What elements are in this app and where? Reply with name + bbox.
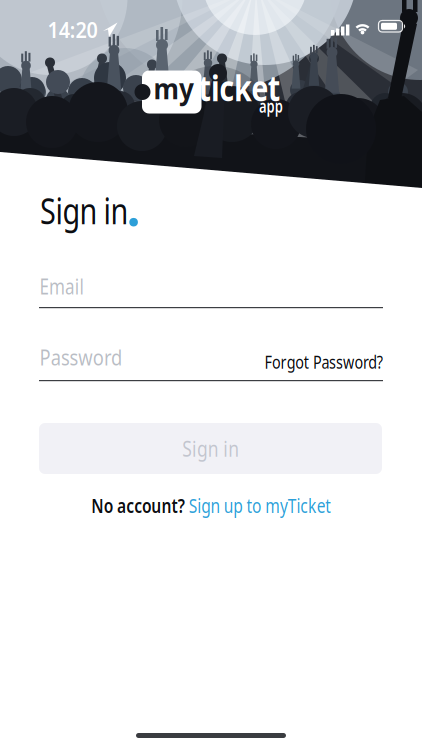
button[interactable]: Sign up to myTicket [182, 492, 364, 519]
staticText: Password [39, 343, 135, 371]
staticText: Sign up to myTicket [182, 492, 364, 519]
staticText: app [259, 94, 291, 117]
staticText: ticket [198, 63, 301, 111]
staticText: Forgot Password? [229, 349, 383, 374]
staticText: 14:20 [47, 15, 101, 44]
button[interactable]: Sign in [39, 423, 382, 474]
textField[interactable]: Email [39, 269, 383, 309]
staticText: Sign in [176, 434, 245, 463]
secureTextField[interactable]: Password [39, 342, 259, 382]
button[interactable]: Forgot Password? [229, 349, 383, 374]
staticText: my [153, 68, 199, 107]
staticText: Email [39, 272, 95, 300]
staticText: Sign in [40, 186, 150, 234]
staticText: No account? [57, 492, 177, 519]
